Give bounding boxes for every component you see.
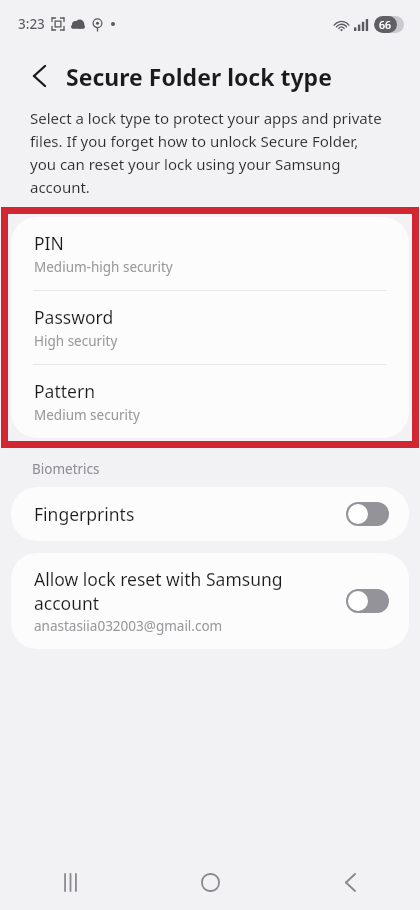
button[interactable]: Back — [26, 63, 52, 89]
button[interactable]: Fingerprints — [11, 487, 409, 541]
staticText: Password — [34, 305, 114, 329]
button[interactable]: Pattern — [11, 365, 409, 438]
staticText: Biometrics — [32, 460, 100, 478]
button[interactable]: PIN — [11, 217, 409, 290]
staticText: Secure Folder lock type — [66, 61, 332, 92]
button[interactable]: Recent apps — [0, 854, 140, 910]
staticText: Pattern — [34, 379, 95, 403]
staticText: Allow lock reset with Samsung account — [34, 567, 332, 615]
staticText: anastasiia032003@gmail.com — [34, 617, 223, 635]
button[interactable]: Allow lock reset with Samsung account — [11, 553, 409, 649]
staticText: 3:23 — [18, 15, 45, 33]
staticText: High security — [34, 332, 118, 350]
staticText: Medium security — [34, 406, 140, 424]
button[interactable]: Toggle — [346, 502, 389, 526]
staticText: 66 — [379, 18, 392, 32]
button[interactable]: Home — [140, 854, 280, 910]
staticText: Medium-high security — [34, 258, 173, 276]
button[interactable]: Password — [11, 291, 409, 364]
staticText: PIN — [34, 231, 64, 255]
button[interactable]: Back — [280, 854, 420, 910]
staticText: Select a lock type to protect your apps … — [30, 108, 384, 197]
button[interactable]: Toggle — [346, 589, 389, 613]
staticText: Fingerprints — [34, 502, 346, 526]
